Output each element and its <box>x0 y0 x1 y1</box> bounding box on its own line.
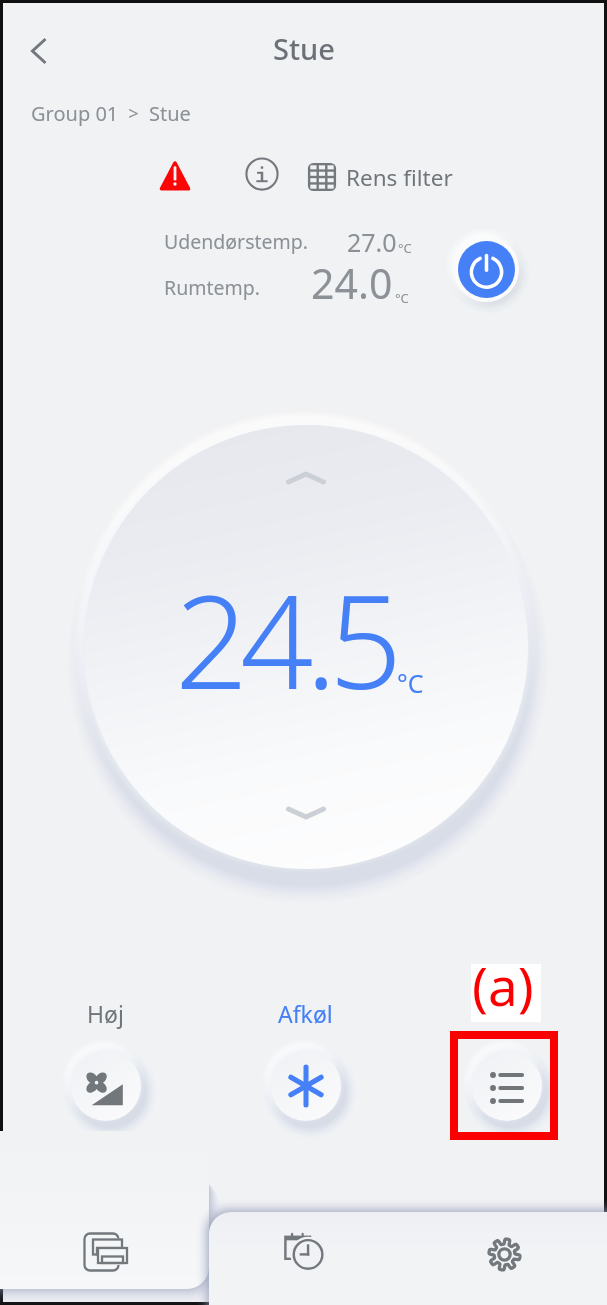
staticText: Stue <box>149 100 191 127</box>
button[interactable]: Rens filter <box>301 156 453 198</box>
button[interactable]: Power <box>458 241 515 298</box>
staticText: (a) <box>472 949 534 1021</box>
button[interactable]: Info <box>243 155 281 193</box>
staticText: 27.0 <box>347 225 397 259</box>
button[interactable]: Options <box>472 1051 542 1121</box>
staticText: 24.5 <box>175 552 395 726</box>
staticText: Rumtemp. <box>164 274 260 301</box>
staticText: 24.0 <box>311 255 393 311</box>
staticText: Stue <box>273 29 335 68</box>
staticText: Høj <box>87 998 124 1029</box>
button[interactable]: Devices <box>3 1181 208 1286</box>
button[interactable]: Schedule <box>208 1214 405 1305</box>
button[interactable]: Settings <box>405 1214 604 1305</box>
button[interactable]: Warning <box>155 156 195 196</box>
staticText: Rens filter <box>346 162 453 193</box>
staticText: °C <box>397 666 424 700</box>
staticText: > <box>119 101 149 126</box>
button[interactable]: Afkøl <box>271 1051 341 1121</box>
button[interactable]: Høj <box>71 1051 141 1121</box>
button[interactable]: Back <box>13 25 65 77</box>
staticText: Udendørstemp. <box>164 228 308 255</box>
staticText: Afkøl <box>278 998 333 1029</box>
staticText: Group 01 <box>31 100 119 127</box>
staticText: °C <box>395 289 409 307</box>
staticText: °C <box>398 239 412 257</box>
